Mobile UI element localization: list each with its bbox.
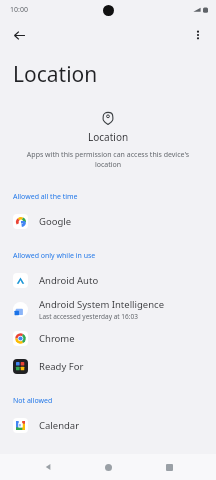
staticText: Not allowed xyxy=(13,396,216,406)
button[interactable]: More options xyxy=(186,23,210,47)
staticText: Chrome xyxy=(39,332,75,345)
button[interactable]: Recent apps xyxy=(156,454,182,480)
staticText: Google xyxy=(39,215,72,228)
button[interactable]: Chrome xyxy=(0,324,216,352)
button[interactable]: Back xyxy=(6,22,32,48)
staticText: Android System Intelligence xyxy=(39,298,165,311)
staticText: Last accessed yesterday at 16:03 xyxy=(39,312,138,321)
staticText: 10:00 xyxy=(10,5,28,15)
staticText: Apps with this permission can access thi… xyxy=(26,150,190,170)
staticText: Location xyxy=(13,60,98,89)
button[interactable]: Google xyxy=(0,207,216,235)
staticText: Allowed only while in use xyxy=(13,251,216,261)
staticText: Ready For xyxy=(39,360,84,373)
button[interactable]: Home xyxy=(95,454,121,480)
staticText: Calendar xyxy=(39,419,80,432)
staticText: Location xyxy=(88,130,129,144)
button[interactable]: Calendar xyxy=(0,411,216,439)
button[interactable]: Android Auto xyxy=(0,266,216,294)
button[interactable]: Back xyxy=(35,454,61,480)
staticText: Android Auto xyxy=(39,274,99,287)
staticText: Allowed all the time xyxy=(13,192,216,202)
button[interactable]: Ready For xyxy=(0,352,216,380)
button[interactable]: Android System Intelligence xyxy=(0,294,216,324)
